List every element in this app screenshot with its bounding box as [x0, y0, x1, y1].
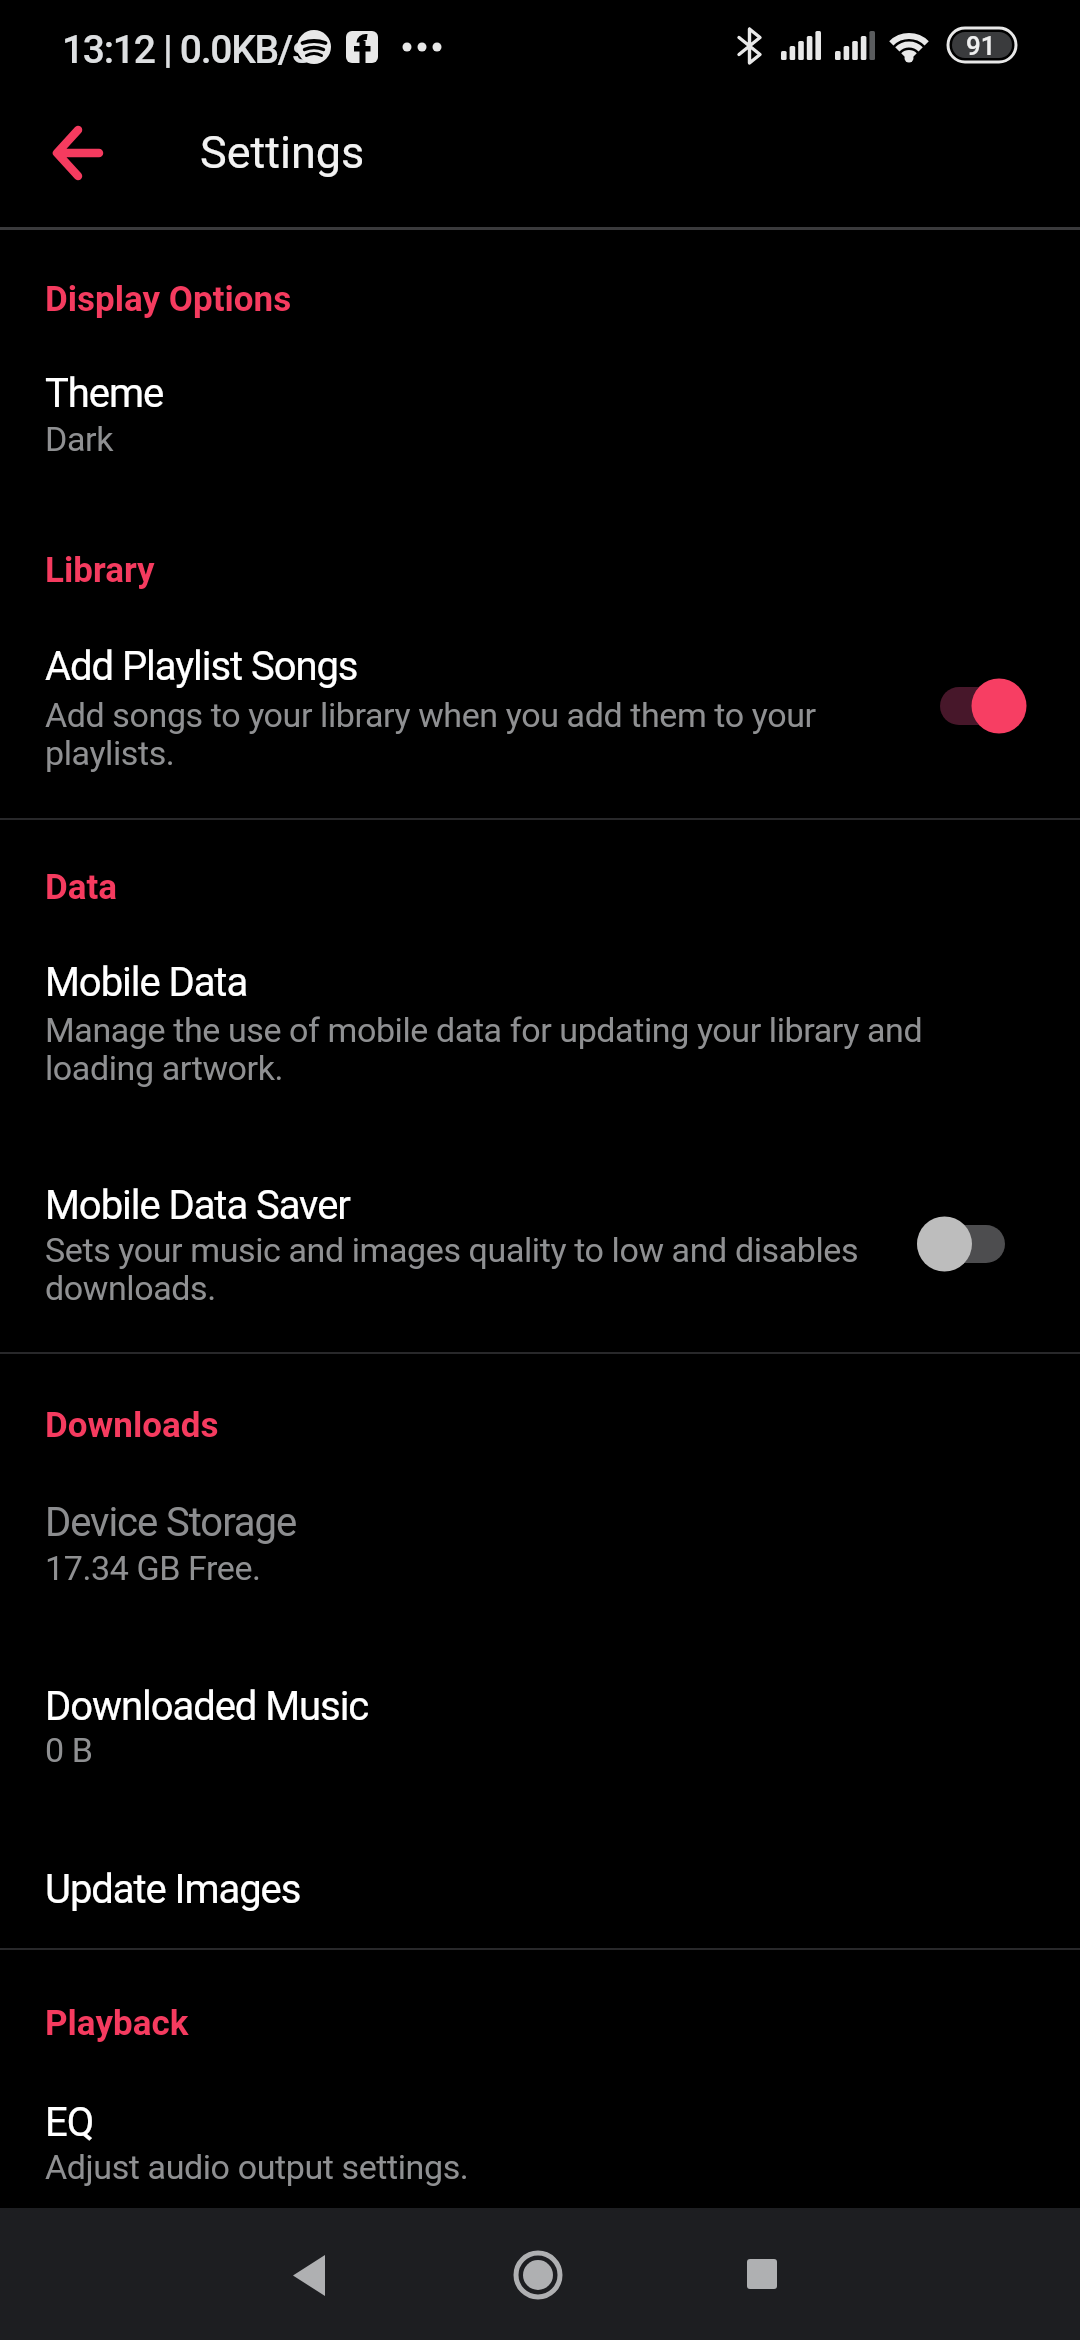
staticText: Playback — [45, 2003, 189, 2044]
button[interactable]: Add Playlist Songs — [0, 615, 1080, 805]
staticText: Dark — [45, 419, 113, 459]
staticText: playlists. — [45, 733, 175, 773]
button[interactable]: EQ — [0, 2065, 1080, 2208]
staticText: Adjust audio output settings. — [45, 2147, 469, 2187]
button[interactable] — [30, 105, 130, 200]
staticText: Data — [45, 867, 118, 908]
staticText: Display Options — [45, 279, 292, 320]
staticText: Manage the use of mobile data for updati… — [45, 1010, 923, 1050]
staticText: 0 B — [45, 1730, 93, 1770]
staticText: Theme — [45, 370, 164, 417]
button[interactable]: Mobile Data — [0, 930, 1080, 1115]
staticText: EQ — [45, 2099, 94, 2146]
staticText: 13:12 | 0.0KB/s — [62, 27, 311, 73]
staticText: Settings — [200, 126, 365, 179]
button[interactable]: Device Storage — [0, 1470, 1080, 1620]
staticText: Add songs to your library when you add t… — [45, 695, 816, 735]
button[interactable]: Mobile Data Saver — [0, 1150, 1080, 1335]
staticText: 17.34 GB Free. — [45, 1548, 261, 1588]
button[interactable] — [492, 2226, 588, 2322]
staticText: Update Images — [45, 1866, 301, 1913]
staticText: 91 — [966, 31, 996, 61]
staticText: Downloaded Music — [45, 1683, 369, 1730]
staticText: loading artwork. — [45, 1048, 284, 1088]
staticText: Mobile Data — [45, 959, 248, 1006]
button[interactable] — [261, 2226, 357, 2322]
button[interactable] — [723, 2226, 819, 2322]
staticText: Mobile Data Saver — [45, 1182, 350, 1229]
button[interactable] — [912, 678, 1036, 734]
button[interactable]: Update Images — [0, 1835, 1080, 1945]
staticText: Downloads — [45, 1405, 219, 1446]
button[interactable]: Downloaded Music — [0, 1655, 1080, 1805]
staticText: downloads. — [45, 1268, 216, 1308]
staticText: Add Playlist Songs — [45, 643, 358, 690]
button[interactable]: Theme — [0, 340, 1080, 480]
button[interactable] — [889, 1216, 1033, 1272]
staticText: Sets your music and images quality to lo… — [45, 1230, 859, 1270]
staticText: Library — [45, 550, 155, 591]
staticText: Device Storage — [45, 1499, 297, 1546]
